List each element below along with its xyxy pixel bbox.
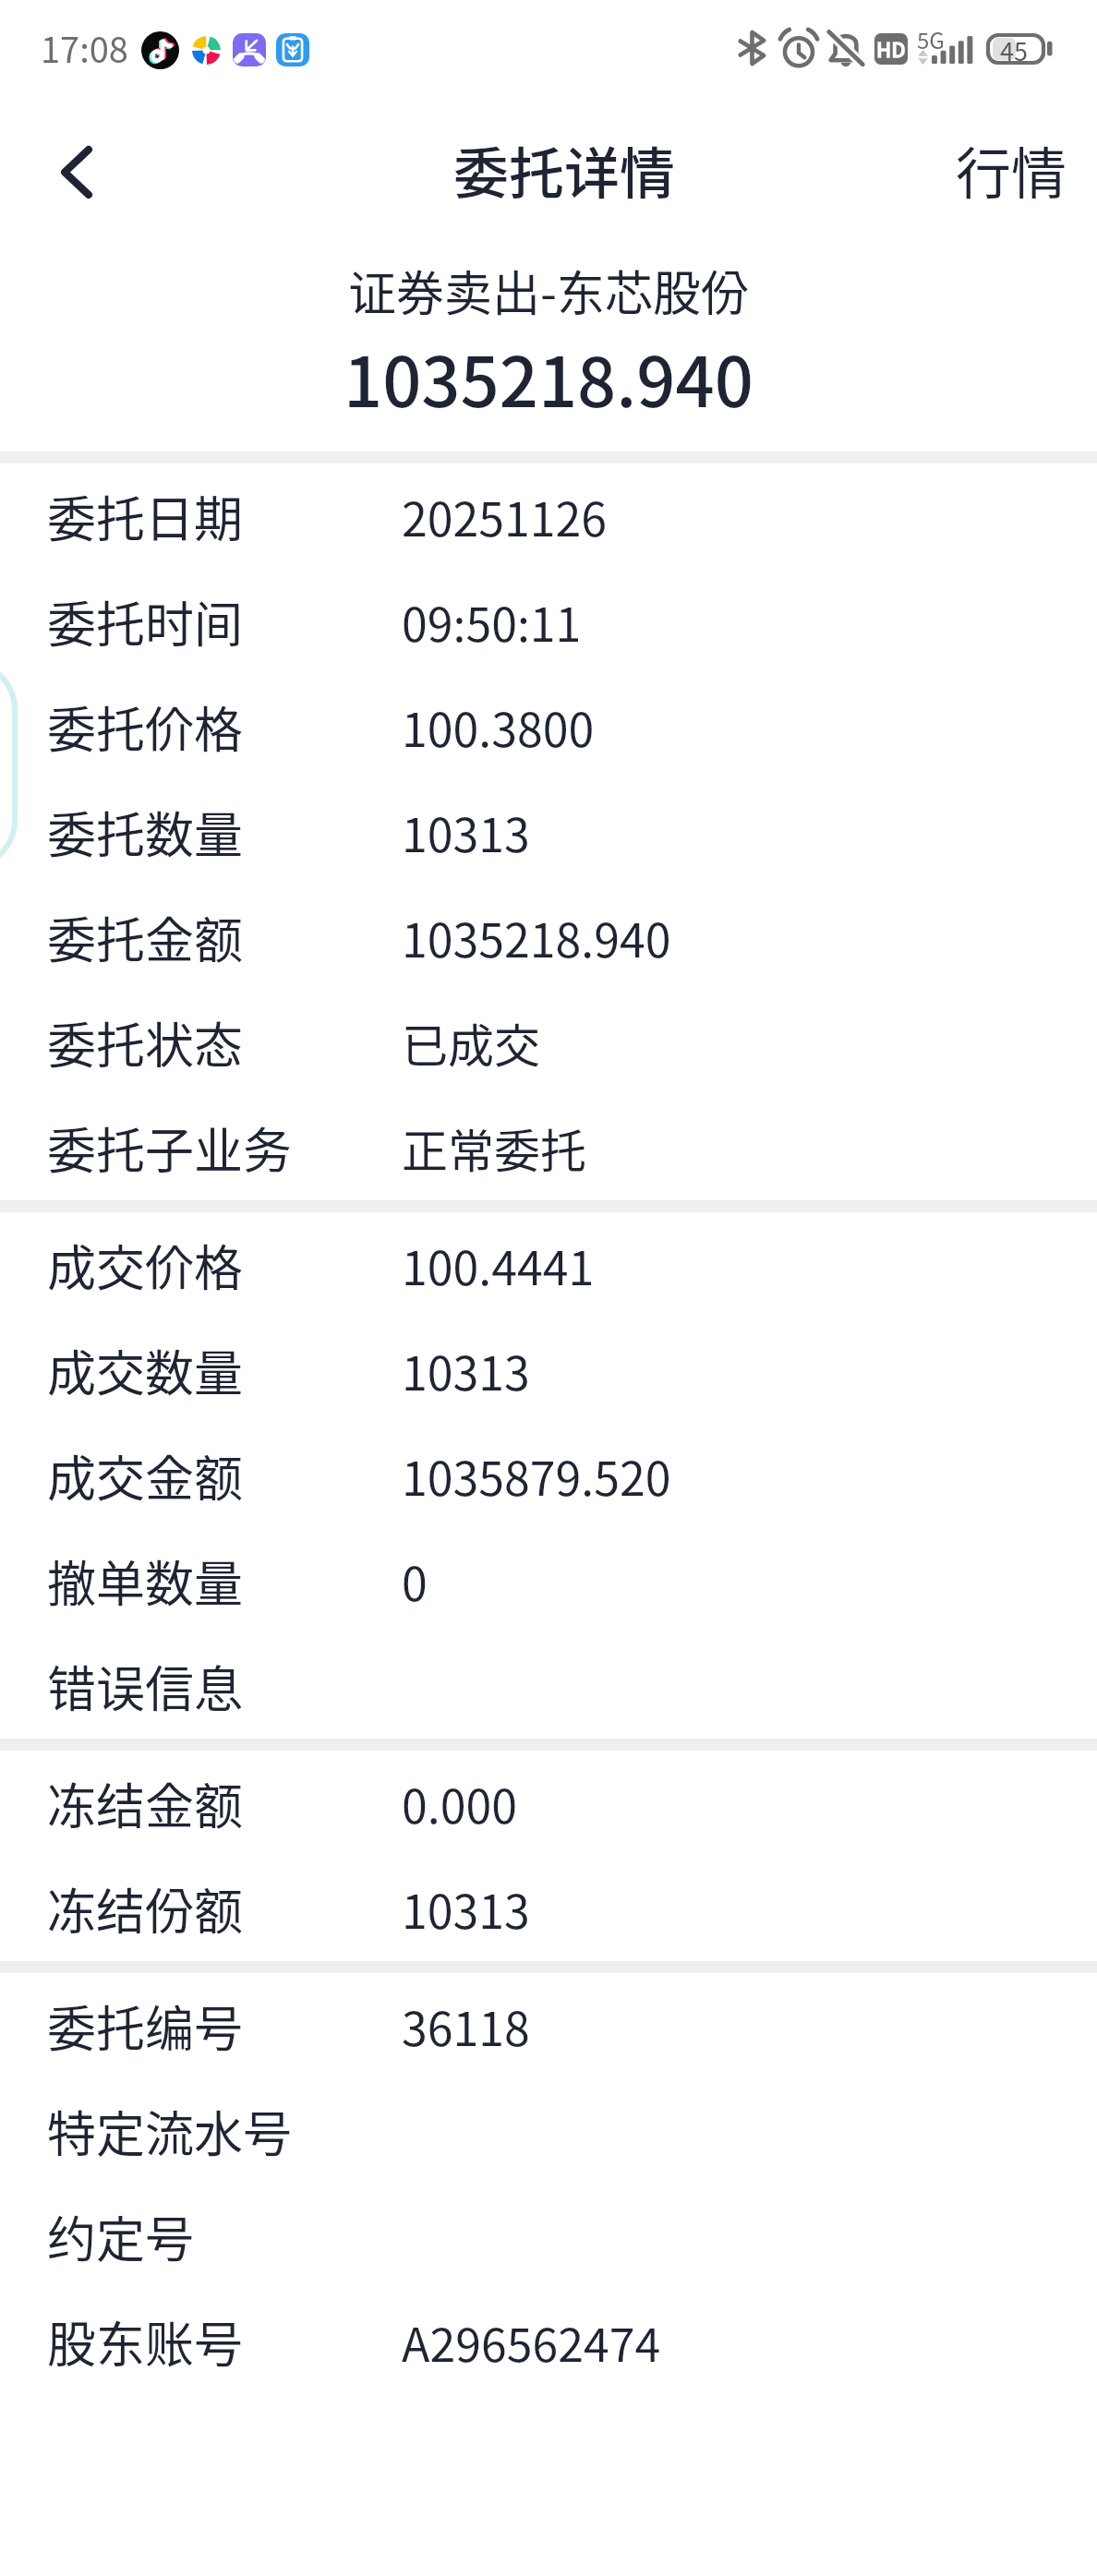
staticText: 委托状态 [47,1007,243,1078]
staticText: 正常委托 [402,1114,586,1181]
staticText: 行情 [956,129,1067,210]
button[interactable]: 委托价格 [0,674,1097,779]
staticText: 1035879.520 [402,1442,671,1509]
staticText: 委托金额 [47,902,243,973]
button[interactable]: 委托编号 [0,1973,1097,2078]
staticText: HD [876,33,906,63]
button[interactable]: Back [41,136,113,208]
staticText: 委托数量 [47,797,243,868]
button[interactable]: 股东账号 [0,2289,1097,2394]
staticText: 10313 [402,799,530,865]
staticText: 100.4441 [402,1232,595,1298]
staticText: A296562474 [402,2308,661,2375]
staticText: 100.3800 [402,693,595,760]
staticText: 冻结份额 [47,1873,243,1944]
staticText: 证券卖出-东芯股份 [348,256,750,325]
staticText: 冻结金额 [47,1768,243,1839]
button[interactable]: 委托数量 [0,779,1097,885]
button[interactable]: 委托时间 [0,569,1097,674]
staticText: 45 [1000,32,1028,68]
button[interactable]: 委托日期 [0,463,1097,569]
staticText: 约定号 [47,2201,194,2272]
button[interactable]: 约定号 [0,2184,1097,2289]
staticText: 错误信息 [47,1651,243,1722]
button[interactable]: 委托子业务 [0,1095,1097,1200]
staticText: 成交价格 [47,1230,243,1301]
button[interactable]: 行情 [934,107,1089,232]
button[interactable]: 错误信息 [0,1633,1097,1739]
staticText: 0.000 [402,1770,517,1836]
staticText: 20251126 [402,483,607,549]
staticText: 委托编号 [47,1991,243,2062]
button[interactable]: 委托状态 [0,990,1097,1095]
button[interactable]: 特定流水号 [0,2078,1097,2184]
button[interactable]: 冻结份额 [0,1856,1097,1961]
staticText: 17:08 [41,22,128,73]
staticText: 5G [917,23,945,55]
staticText: 0 [402,1547,428,1614]
staticText: 已成交 [402,1009,540,1076]
staticText: 1035218.940 [344,328,753,427]
staticText: 撤单数量 [47,1546,243,1617]
button[interactable]: 成交数量 [0,1318,1097,1423]
button[interactable]: 委托金额 [0,885,1097,990]
staticText: 36118 [402,1992,530,2059]
button[interactable]: 撤单数量 [0,1528,1097,1633]
staticText: 委托时间 [47,586,243,657]
staticText: 委托详情 [453,129,675,210]
button[interactable]: 成交价格 [0,1212,1097,1318]
staticText: 委托价格 [47,692,243,763]
staticText: 10313 [402,1875,530,1942]
staticText: 成交金额 [47,1440,243,1511]
staticText: 1035218.940 [402,904,671,970]
button[interactable]: 冻结金额 [0,1751,1097,1856]
staticText: 特定流水号 [47,2096,292,2167]
staticText: 成交数量 [47,1335,243,1406]
staticText: 股东账号 [47,2306,243,2377]
staticText: 09:50:11 [402,588,582,655]
staticText: 委托子业务 [47,1113,292,1184]
staticText: 10313 [402,1337,530,1403]
staticText: 委托日期 [47,481,243,552]
button[interactable]: 成交金额 [0,1423,1097,1528]
